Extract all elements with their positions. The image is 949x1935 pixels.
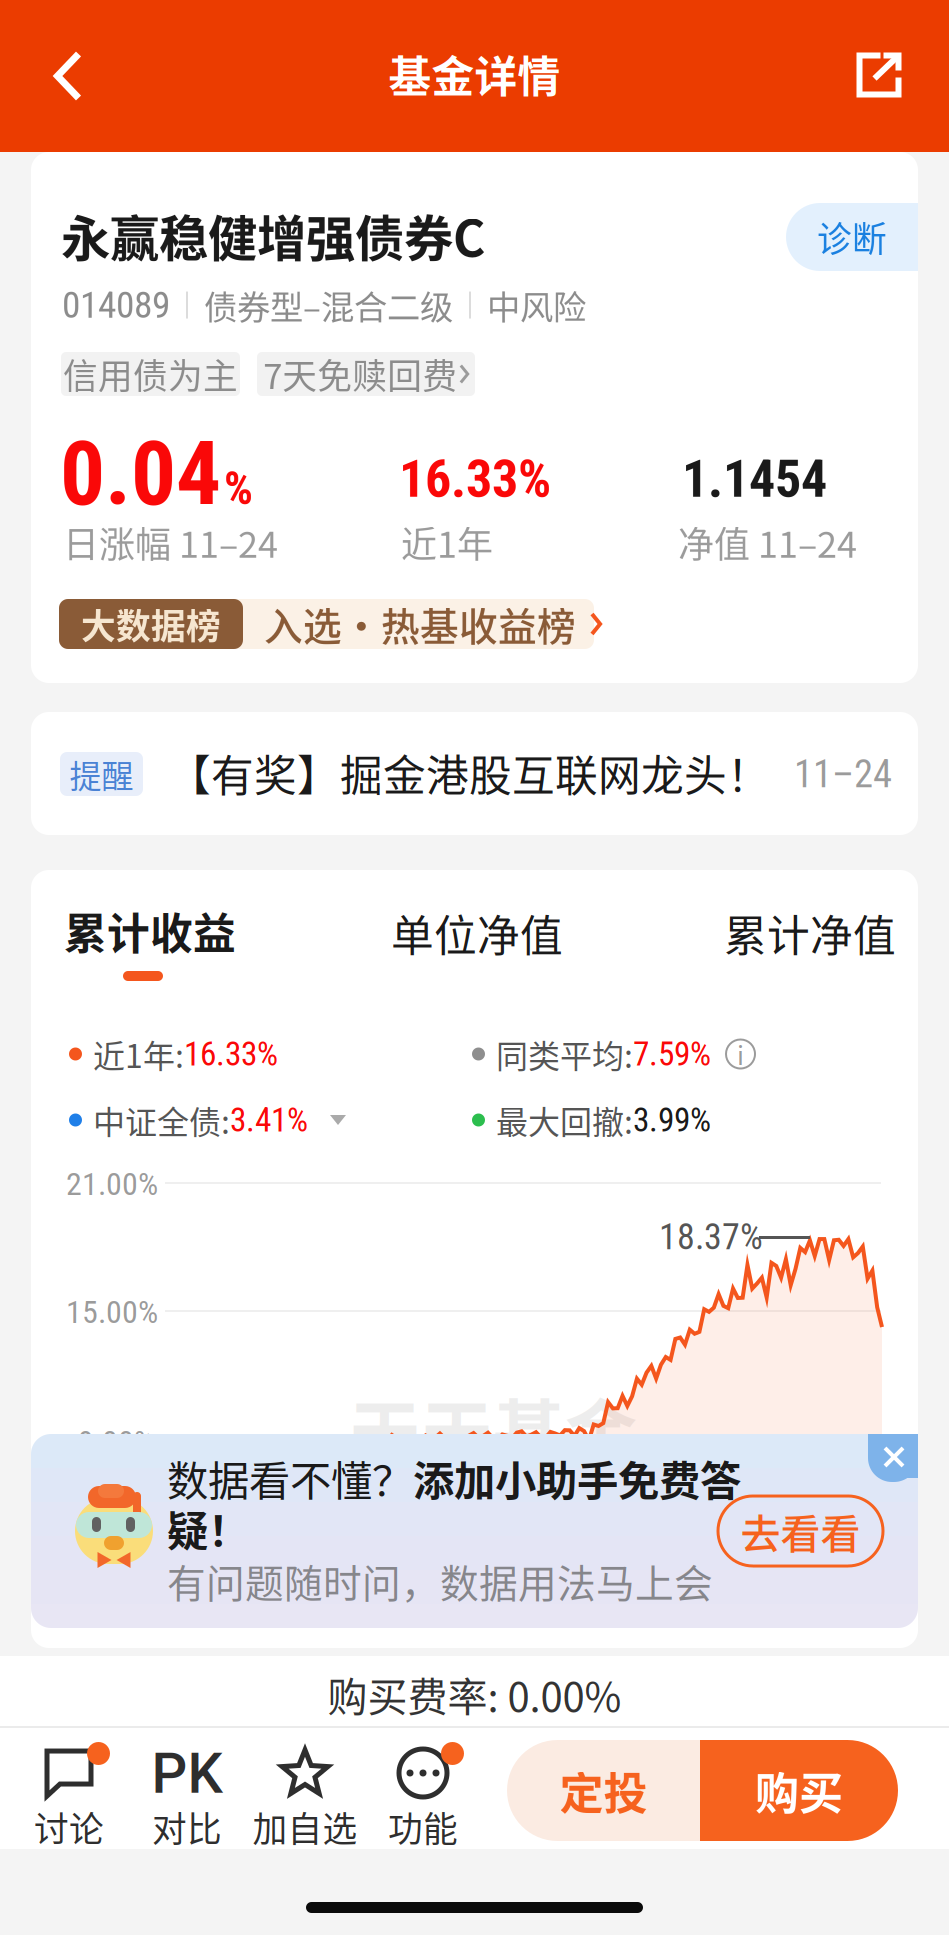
staticText: 数据看不懂？ xyxy=(167,1448,413,1508)
staticText: % xyxy=(224,462,253,515)
staticText: 中风险 xyxy=(487,281,586,329)
button[interactable]: 诊断 xyxy=(786,203,949,271)
button[interactable]: 累计净值 xyxy=(720,908,900,958)
staticText: 提醒 xyxy=(69,751,133,797)
button[interactable]: 关闭 xyxy=(868,1434,918,1482)
staticText: 基金详情 xyxy=(388,43,560,105)
staticText: 讨论 xyxy=(34,1802,104,1852)
button[interactable]: 返回 xyxy=(43,47,93,105)
staticText: 最大回撤: xyxy=(496,1097,633,1143)
staticText: 单位净值 xyxy=(391,902,563,964)
staticText: 债券型–混合二级 xyxy=(204,281,453,329)
staticText: 【有奖】掘金港股互联网龙头！ xyxy=(168,742,770,804)
staticText: 3.99% xyxy=(633,1100,711,1140)
button[interactable]: 讨论 xyxy=(10,1740,128,1858)
staticText: 18.37% xyxy=(659,1216,763,1258)
button[interactable]: PK xyxy=(128,1740,246,1858)
staticText: 9.00% xyxy=(78,1423,154,1461)
button[interactable]: 分享 xyxy=(852,48,906,102)
staticText: 购买 xyxy=(755,1759,843,1822)
staticText: 大数据榜 xyxy=(81,599,221,649)
staticText: 近1年: xyxy=(93,1031,184,1077)
staticText: 诊断 xyxy=(817,212,887,262)
button[interactable]: 购买 xyxy=(700,1740,898,1841)
staticText: 014089 xyxy=(62,283,170,327)
staticText: 加自选 xyxy=(252,1802,357,1852)
staticText: PK xyxy=(151,1741,222,1806)
button[interactable]: 定投 xyxy=(507,1740,700,1841)
staticText: 11–24 xyxy=(794,751,892,797)
staticText: 永赢稳健增强债券C xyxy=(61,199,485,271)
button[interactable]: 功能 xyxy=(364,1740,482,1858)
button[interactable]: 提醒 xyxy=(31,712,918,835)
button[interactable]: 累计收益 xyxy=(60,906,260,992)
staticText: 购买费率: 0.00% xyxy=(327,1665,621,1723)
staticText: 信用债为主 xyxy=(63,349,238,399)
staticText: 天天基金 xyxy=(349,1376,637,1480)
staticText: 16.33% xyxy=(399,448,551,509)
staticText: 有问题随时问，数据用法马上会 xyxy=(167,1553,713,1609)
staticText: 0.04 xyxy=(60,422,221,526)
button[interactable]: 去看看 xyxy=(718,1496,883,1566)
staticText: i xyxy=(737,1036,744,1072)
staticText: 中证全债: xyxy=(93,1097,230,1143)
staticText: 去看看 xyxy=(740,1502,860,1560)
staticText: 定投 xyxy=(559,1759,647,1822)
staticText: 对比 xyxy=(152,1802,222,1852)
staticText: 同类平均: xyxy=(496,1031,633,1077)
staticText: 7.59% xyxy=(633,1034,711,1074)
button[interactable]: 大数据榜 xyxy=(59,599,594,649)
staticText: 15.00% xyxy=(66,1293,158,1331)
staticText: 21.00% xyxy=(66,1165,158,1203)
staticText: 累计收益 xyxy=(64,900,236,962)
staticText: 16.33% xyxy=(184,1034,278,1074)
staticText: 3.41% xyxy=(230,1100,308,1140)
staticText: 日涨幅 11–24 xyxy=(63,516,278,568)
button[interactable]: 7天免赎回费 xyxy=(257,352,475,396)
staticText: 净值 11–24 xyxy=(678,516,857,568)
staticText: 1.1454 xyxy=(682,448,827,509)
button[interactable]: 单位净值 xyxy=(387,908,567,958)
staticText: 7天免赎回费 xyxy=(263,349,457,399)
staticText: 疑！ xyxy=(167,1498,249,1558)
button[interactable]: 加自选 xyxy=(246,1740,364,1858)
staticText: 添加小助手免费答 xyxy=(413,1448,741,1508)
staticText: 近1年 xyxy=(401,516,493,568)
staticText: 功能 xyxy=(388,1802,458,1852)
staticText: 入选·热基收益榜 xyxy=(264,596,576,652)
staticText: 累计净值 xyxy=(724,902,896,964)
